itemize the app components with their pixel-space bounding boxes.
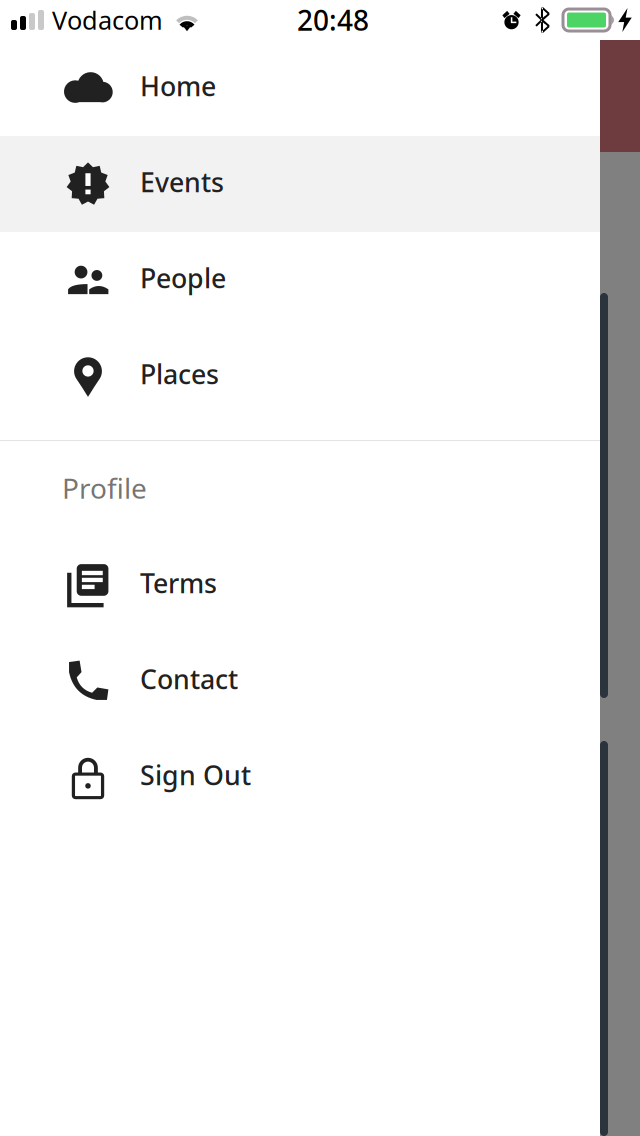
- button[interactable]: Sign Out: [0, 729, 600, 825]
- button[interactable]: Contact: [0, 633, 600, 729]
- button[interactable]: Places: [0, 328, 600, 424]
- button[interactable]: Events: [0, 136, 600, 232]
- staticText: People: [140, 260, 226, 296]
- staticText: 20:48: [297, 1, 369, 39]
- staticText: Profile: [62, 469, 147, 507]
- staticText: Terms: [140, 565, 217, 601]
- staticText: Places: [140, 356, 219, 392]
- staticText: Contact: [140, 661, 238, 697]
- button[interactable]: Home: [0, 40, 600, 136]
- button[interactable]: Terms: [0, 537, 600, 633]
- staticText: Home: [140, 68, 216, 104]
- staticText: Events: [140, 164, 224, 200]
- staticText: Vodacom: [52, 3, 163, 37]
- button[interactable]: People: [0, 232, 600, 328]
- staticText: Sign Out: [140, 757, 251, 793]
